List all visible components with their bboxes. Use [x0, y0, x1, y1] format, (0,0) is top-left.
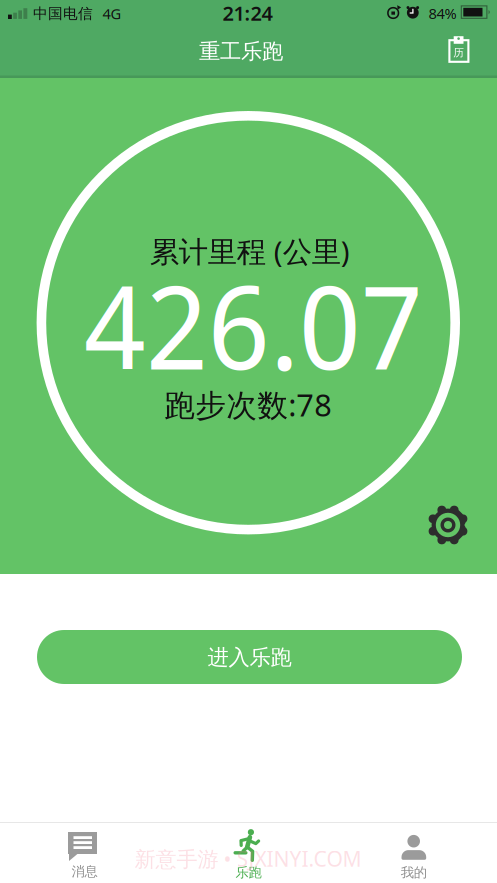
- staticText: 21:24: [222, 0, 272, 26]
- staticText: 重工乐跑: [199, 38, 283, 65]
- staticText: 跑步次数:78: [164, 384, 332, 425]
- staticText: 84%: [428, 3, 456, 23]
- staticText: 我的: [401, 864, 427, 881]
- staticText: 进入乐跑: [207, 644, 291, 671]
- staticText: 新意手游 • SJXINYI.COM: [134, 844, 361, 873]
- staticText: 4G: [102, 4, 121, 23]
- staticText: 乐跑: [235, 864, 261, 881]
- staticText: 426.07: [84, 247, 423, 403]
- staticText: 历: [453, 46, 464, 59]
- staticText: 中国电信: [33, 5, 93, 23]
- staticText: 累计里程 (公里): [150, 231, 350, 270]
- staticText: 消息: [71, 863, 97, 880]
